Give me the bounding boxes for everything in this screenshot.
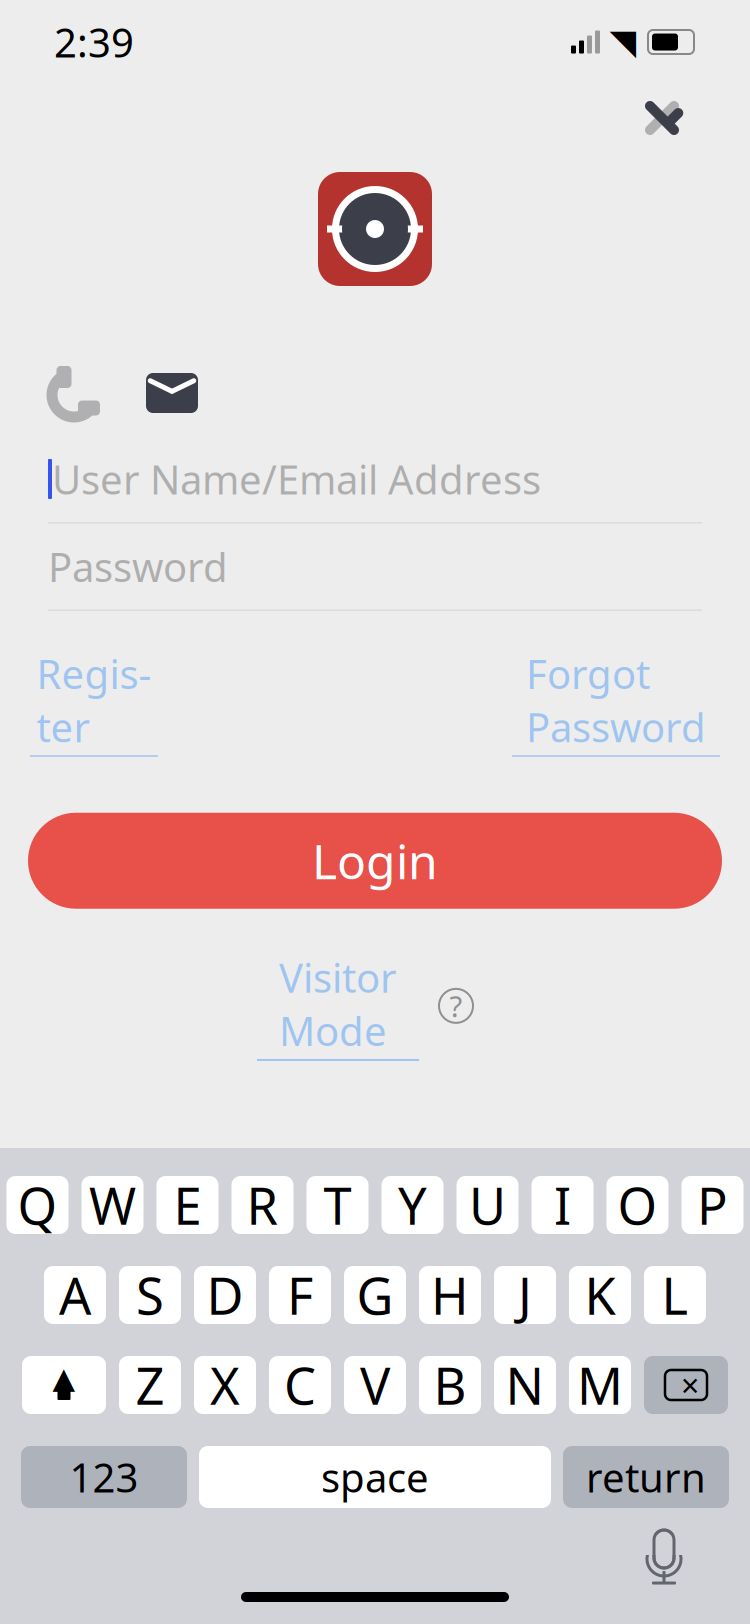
button[interactable]: Login	[28, 813, 722, 909]
button[interactable]: D	[194, 1266, 256, 1324]
staticText: Z	[135, 1351, 164, 1419]
staticText: Forgot Password	[526, 647, 706, 753]
staticText: V	[360, 1351, 390, 1419]
staticText: D	[206, 1261, 243, 1329]
button[interactable]: E	[156, 1176, 218, 1234]
staticText: P	[697, 1171, 728, 1239]
button[interactable]: P	[681, 1176, 743, 1234]
staticText: ?	[449, 986, 462, 1025]
button[interactable]: V	[344, 1356, 406, 1414]
staticText: U	[469, 1171, 506, 1239]
button[interactable]: O	[606, 1176, 668, 1234]
button[interactable]: return	[563, 1446, 729, 1508]
staticText: Q	[17, 1171, 57, 1239]
staticText: space	[321, 1450, 429, 1503]
button[interactable]: M	[569, 1356, 631, 1414]
staticText: C	[284, 1351, 316, 1419]
button[interactable]: G	[344, 1266, 406, 1324]
staticText: User Name/Email Address	[52, 452, 541, 505]
button[interactable]: Register	[30, 647, 158, 757]
button[interactable]: Q	[6, 1176, 68, 1234]
button[interactable]: S	[119, 1266, 181, 1324]
button[interactable]: Phone number login	[28, 358, 124, 428]
staticText: R	[246, 1171, 278, 1239]
staticText: S	[136, 1261, 164, 1329]
button[interactable]: Z	[119, 1356, 181, 1414]
button[interactable]: U	[456, 1176, 518, 1234]
staticText: T	[323, 1171, 351, 1239]
staticText: I	[554, 1171, 571, 1239]
staticText: 2:39	[54, 15, 134, 68]
button[interactable]: Help	[437, 987, 475, 1025]
staticText: Visitor Mode	[279, 951, 397, 1057]
button[interactable]: I	[531, 1176, 593, 1234]
button[interactable]: K	[569, 1266, 631, 1324]
staticText: E	[173, 1171, 201, 1239]
button[interactable]: Visitor Mode	[257, 951, 419, 1061]
staticText: Login	[312, 829, 438, 893]
button[interactable]: J	[494, 1266, 556, 1324]
button[interactable]: A	[44, 1266, 106, 1324]
button[interactable]: B	[419, 1356, 481, 1414]
staticText: N	[505, 1351, 544, 1419]
staticText: Register	[36, 647, 151, 753]
staticText: H	[431, 1261, 469, 1329]
staticText: Y	[398, 1171, 427, 1239]
staticText: ×	[681, 1364, 699, 1406]
staticText: Password	[48, 540, 228, 593]
button[interactable]: Shift	[22, 1356, 106, 1414]
staticText: O	[617, 1171, 657, 1239]
button[interactable]: Y	[381, 1176, 443, 1234]
staticText: ▲	[52, 1361, 75, 1395]
button[interactable]: C	[269, 1356, 331, 1414]
staticText: A	[59, 1261, 91, 1329]
staticText: M	[577, 1351, 623, 1419]
staticText: return	[586, 1450, 706, 1503]
staticText: F	[287, 1261, 313, 1329]
staticText: B	[433, 1351, 466, 1419]
button[interactable]: Dictate	[636, 1522, 692, 1592]
staticText: K	[584, 1261, 615, 1329]
button[interactable]: space	[199, 1446, 551, 1508]
staticText: G	[356, 1261, 393, 1329]
staticText: ◥	[609, 22, 636, 62]
button[interactable]: N	[494, 1356, 556, 1414]
button[interactable]: Delete	[644, 1356, 728, 1414]
staticText: W	[89, 1171, 136, 1239]
button[interactable]: W	[81, 1176, 143, 1234]
button[interactable]: L	[644, 1266, 706, 1324]
button[interactable]: 123	[21, 1446, 187, 1508]
staticText: 123	[69, 1450, 138, 1503]
button[interactable]: R	[231, 1176, 293, 1234]
button[interactable]: Close	[632, 88, 692, 148]
button[interactable]: Email login	[124, 358, 220, 428]
button[interactable]: H	[419, 1266, 481, 1324]
staticText: J	[518, 1261, 532, 1329]
staticText: L	[661, 1261, 688, 1329]
staticText: X	[210, 1351, 240, 1419]
button[interactable]: T	[306, 1176, 368, 1234]
button[interactable]: X	[194, 1356, 256, 1414]
button[interactable]: F	[269, 1266, 331, 1324]
button[interactable]: Forgot Password	[512, 647, 720, 757]
